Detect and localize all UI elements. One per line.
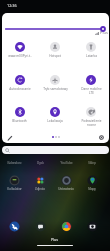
staticText: Dane mobilne [81, 87, 102, 91]
staticText: YouTube [60, 161, 73, 165]
staticText: Sklep [88, 161, 96, 165]
button[interactable]: www.m00Pyri.t.. [2, 42, 37, 62]
staticText: Lokalizacja [47, 119, 63, 123]
button[interactable]: Latarka [73, 42, 109, 62]
button[interactable]: Bluetooth [2, 107, 37, 127]
button[interactable]: Lokalizacja [37, 107, 73, 127]
staticText: Podswietlenie [81, 119, 102, 123]
staticText: Plus [100, 30, 108, 35]
staticText: Kalkulator [7, 187, 22, 191]
button[interactable]: Zdjecia [27, 175, 53, 191]
button[interactable]: Ustawienia [53, 175, 79, 191]
staticText: Tryb samolotowy [43, 87, 68, 91]
staticText: Dysk [37, 161, 44, 165]
staticText: Plus [51, 237, 59, 242]
staticText: www.m00Pyri.t.. [8, 54, 32, 58]
staticText: Ustawienia [58, 187, 74, 191]
button[interactable]: Mapy [79, 175, 105, 191]
button[interactable]: Chrome [61, 221, 72, 232]
button[interactable]: Settings [97, 133, 106, 142]
staticText: LTE [89, 91, 94, 95]
button[interactable]: Podswietlenie [73, 107, 109, 127]
button[interactable]: Aparat [87, 221, 98, 232]
button[interactable]: Kalkulator [1, 175, 27, 191]
staticText: Latarka [86, 54, 97, 58]
button[interactable]: Edit tiles [5, 133, 14, 142]
staticText: Kalendarz [7, 161, 22, 165]
staticText: Autoobracanie [9, 87, 31, 91]
button[interactable]: Telefon [9, 221, 20, 232]
button[interactable] [2, 146, 109, 154]
staticText: Zdjecia [35, 187, 45, 191]
button[interactable]: Tryb samolotowy [37, 75, 73, 95]
button[interactable]: Hotspot [37, 42, 73, 62]
button[interactable]: Wiadomosci [35, 221, 46, 232]
staticText: Hotspot [49, 54, 61, 58]
staticText: 12:36 [7, 3, 17, 8]
staticText: Bluetooth [12, 119, 27, 123]
staticText: Mapy [88, 187, 96, 191]
button[interactable]: Dane mobilne [73, 75, 109, 95]
staticText: nocne [87, 123, 96, 127]
button[interactable]: Autoobracanie [2, 75, 37, 95]
